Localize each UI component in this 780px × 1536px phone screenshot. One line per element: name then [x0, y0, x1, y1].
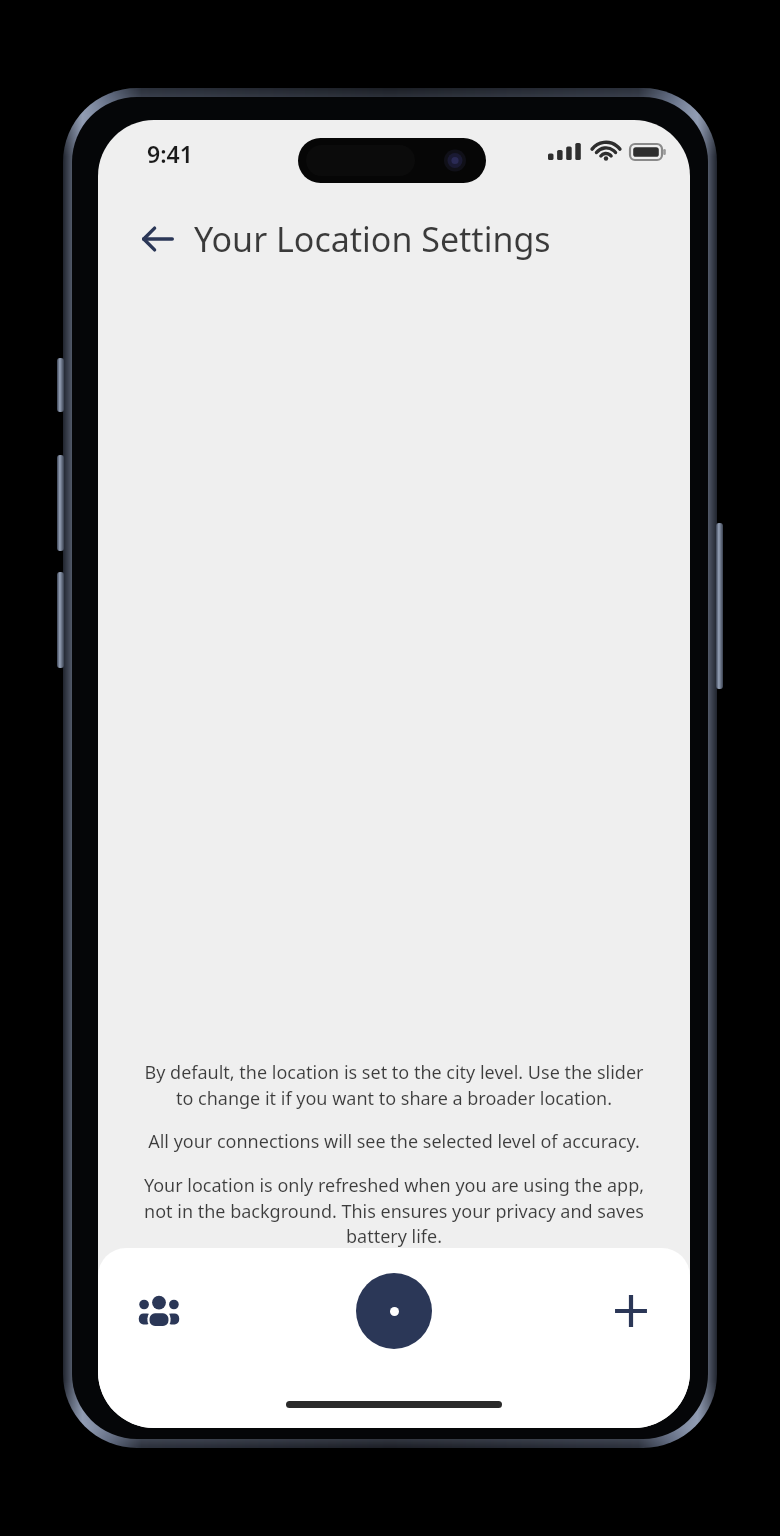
- button[interactable]: Back: [136, 217, 180, 261]
- staticText: All your connections will see the select…: [136, 1129, 652, 1154]
- button[interactable]: Connections: [120, 1272, 198, 1350]
- staticText: By default, the location is set to the c…: [136, 1060, 652, 1110]
- button[interactable]: Add: [592, 1272, 670, 1350]
- staticText: Your Location Settings: [194, 216, 551, 262]
- staticText: 9:41: [147, 138, 193, 169]
- button[interactable]: Your location: [356, 1273, 432, 1349]
- staticText: Your location is only refreshed when you…: [136, 1173, 652, 1248]
